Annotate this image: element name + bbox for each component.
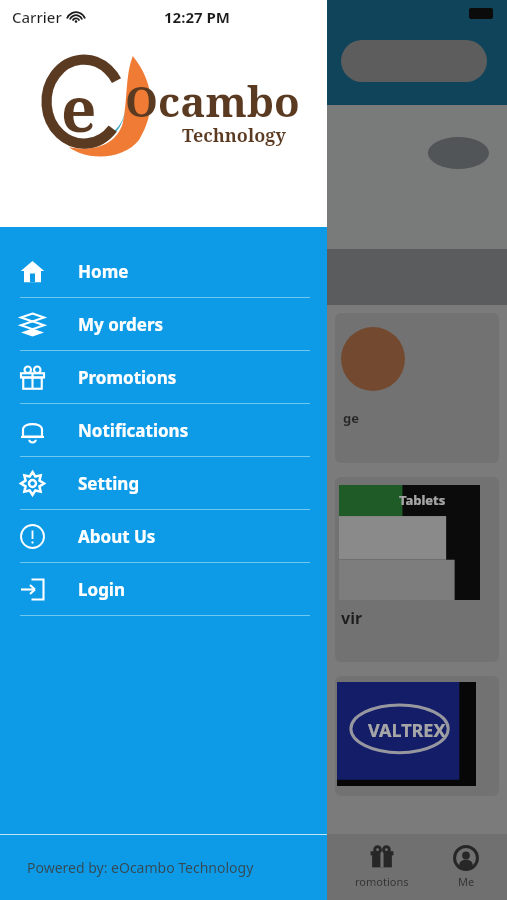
staticText: e (61, 66, 97, 150)
staticText: Notifications (78, 419, 189, 442)
staticText: Technology (182, 123, 286, 148)
staticText: Powered by: eOcambo Technology (27, 858, 254, 877)
button[interactable]: Me (437, 839, 495, 895)
staticText: Me (458, 874, 475, 889)
button[interactable]: Tablets (335, 477, 499, 662)
staticText: Carrier (12, 7, 62, 27)
button[interactable]: Home (0, 245, 327, 297)
staticText: 12:27 PM (164, 7, 230, 27)
button[interactable]: Login (0, 563, 327, 615)
button[interactable]: romotions (339, 839, 425, 895)
button[interactable]: Setting (0, 457, 327, 509)
staticText: Setting (78, 472, 140, 495)
button[interactable]: About Us (0, 510, 327, 562)
button[interactable]: VALTREX (335, 676, 499, 796)
staticText: VALTREX (368, 718, 446, 743)
button[interactable]: Promotions (0, 351, 327, 403)
staticText: About Us (78, 525, 156, 548)
staticText: Ocambo (125, 72, 300, 129)
staticText: Tablets (399, 491, 446, 509)
button[interactable]: Notifications (0, 404, 327, 456)
staticText: Login (78, 578, 126, 601)
staticText: romotions (355, 874, 409, 889)
button[interactable]: My orders (0, 298, 327, 350)
staticText: Home (78, 260, 129, 283)
staticText: Promotions (78, 366, 177, 389)
button[interactable] (341, 40, 487, 82)
staticText: vir (341, 607, 363, 629)
button[interactable]: ge (335, 313, 499, 463)
staticText: My orders (78, 313, 164, 336)
staticText: ge (343, 409, 359, 427)
